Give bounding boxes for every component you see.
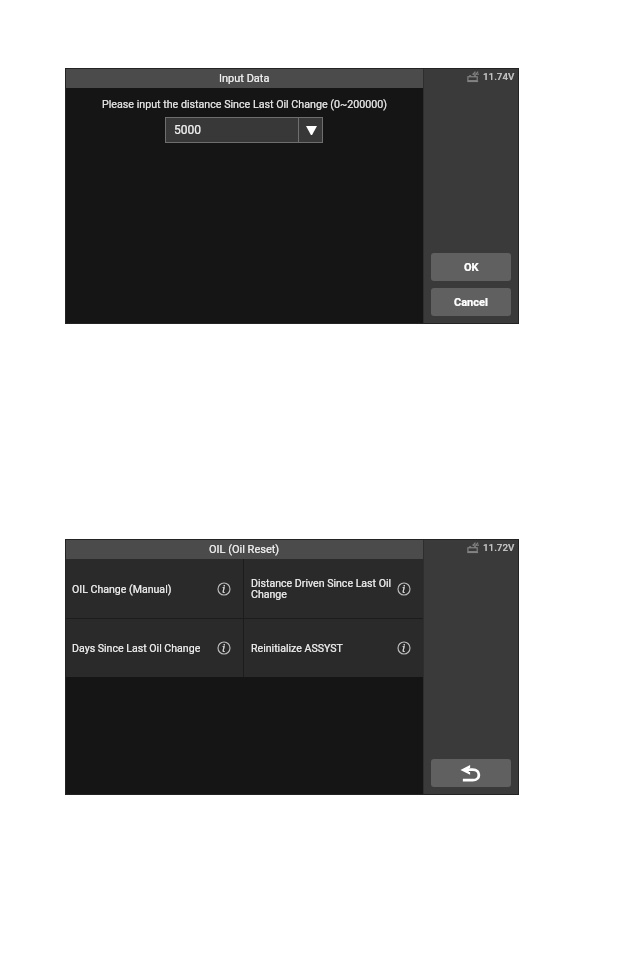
- button[interactable]: Dropdown: [299, 117, 323, 143]
- staticText: Reinitialize ASSYST: [251, 642, 394, 654]
- staticText: 5000: [174, 123, 201, 137]
- button[interactable]: Distance Driven Since Last Oil Change: [251, 559, 411, 618]
- staticText: 11.72V: [483, 542, 515, 553]
- button[interactable]: Days Since Last Oil Change: [72, 619, 231, 677]
- button[interactable]: OIL Change (Manual): [72, 559, 231, 618]
- staticText: Cancel: [454, 296, 488, 309]
- button[interactable]: Back: [431, 759, 511, 787]
- staticText: i: [402, 582, 406, 596]
- staticText: i: [222, 641, 226, 655]
- staticText: OK: [464, 261, 479, 274]
- staticText: OIL Change (Manual): [72, 583, 214, 595]
- staticText: Input Data: [219, 72, 270, 85]
- staticText: Please input the distance Since Last Oil…: [102, 98, 387, 111]
- staticText: Distance Driven Since Last Oil Change: [251, 577, 394, 601]
- button[interactable]: Reinitialize ASSYST: [251, 619, 411, 677]
- staticText: Days Since Last Oil Change: [72, 642, 214, 654]
- staticText: i: [402, 641, 406, 655]
- staticText: i: [222, 582, 226, 596]
- button[interactable]: Cancel: [431, 288, 511, 316]
- staticText: 11.74V: [483, 71, 515, 82]
- button[interactable]: OK: [431, 253, 511, 281]
- staticText: OIL (Oil Reset): [209, 543, 280, 556]
- button[interactable]: 5000: [165, 117, 323, 143]
